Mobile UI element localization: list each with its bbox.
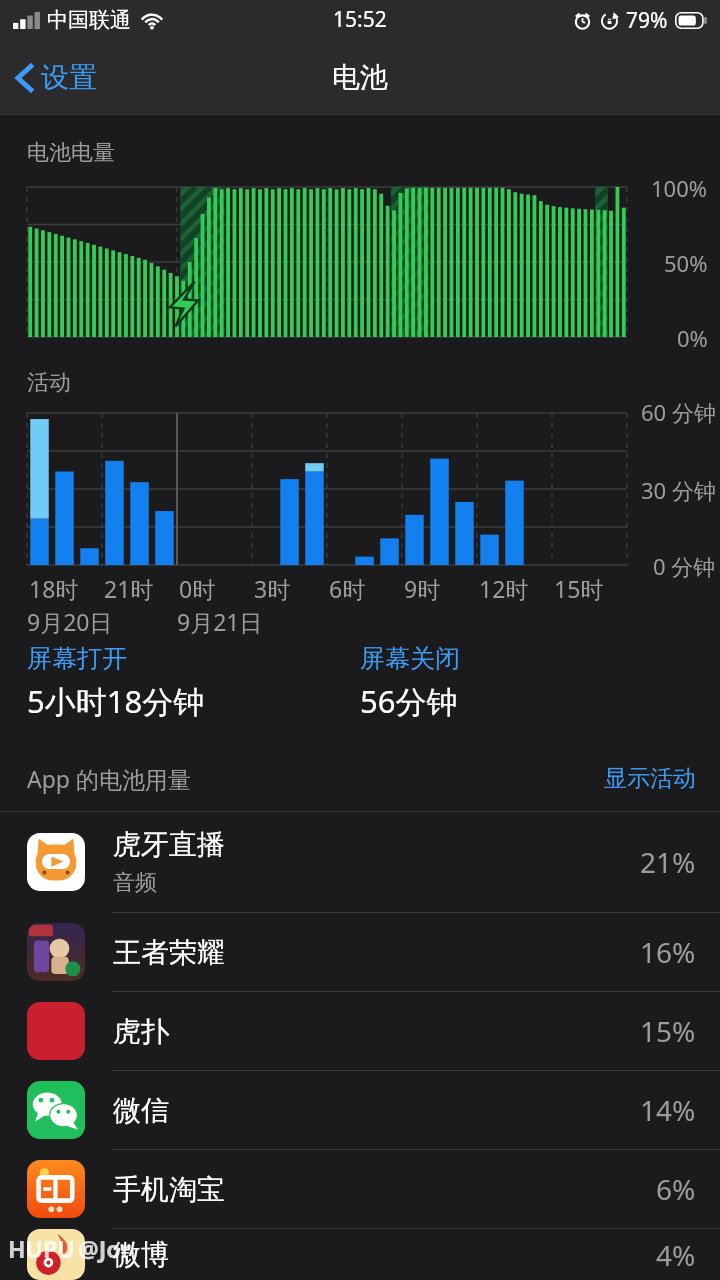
staticText: 60 分钟: [641, 397, 716, 427]
staticText: 设置: [41, 60, 97, 95]
staticText: 15时: [554, 573, 604, 604]
staticText: 电池电量: [27, 139, 115, 167]
staticText: 79%: [626, 6, 668, 35]
staticText: 0%: [677, 323, 708, 353]
staticText: 50%: [664, 248, 708, 278]
staticText: 5小时18分钟: [27, 680, 205, 722]
staticText: 屏幕打开: [27, 643, 127, 674]
staticText: 6时: [329, 573, 366, 604]
staticText: 微博: [113, 1237, 169, 1272]
button[interactable]: 微博: [0, 1229, 720, 1280]
button[interactable]: 手机淘宝: [0, 1150, 720, 1228]
staticText: 4%: [656, 1236, 696, 1274]
staticText: 9月21日: [177, 606, 263, 637]
staticText: 虎扑: [113, 1014, 169, 1049]
staticText: 12时: [479, 573, 529, 604]
staticText: 15%: [640, 1012, 696, 1050]
staticText: 音频: [113, 869, 157, 897]
staticText: 21时: [104, 573, 154, 604]
staticText: HUPU: [8, 1233, 75, 1264]
button[interactable]: 虎牙直播: [0, 812, 720, 912]
staticText: 30 分钟: [641, 475, 716, 505]
staticText: 显示活动: [604, 764, 696, 793]
staticText: 王者荣耀: [113, 935, 225, 970]
staticText: 活动: [27, 369, 71, 397]
staticText: 微信: [113, 1093, 169, 1128]
staticText: App 的电池用量: [27, 763, 191, 794]
button[interactable]: 王者荣耀: [0, 913, 720, 991]
staticText: 21%: [640, 843, 696, 881]
staticText: 电池: [332, 60, 388, 95]
staticText: 9时: [404, 573, 441, 604]
staticText: 0 分钟: [653, 551, 716, 581]
staticText: 15:52: [333, 5, 387, 34]
staticText: 6%: [656, 1170, 696, 1208]
staticText: 16%: [640, 933, 696, 971]
button[interactable]: 微信: [0, 1071, 720, 1149]
staticText: 手机淘宝: [113, 1172, 225, 1207]
button[interactable]: 设置: [0, 50, 115, 105]
staticText: 虎牙直播: [113, 827, 225, 862]
staticText: 14%: [640, 1091, 696, 1129]
staticText: 56分钟: [360, 680, 458, 722]
staticText: 9月20日: [27, 606, 113, 637]
staticText: 屏幕关闭: [360, 643, 460, 674]
staticText: 0时: [179, 573, 216, 604]
staticText: 100%: [651, 173, 708, 203]
staticText: 中国联通: [47, 7, 131, 33]
button[interactable]: 显示活动: [598, 758, 702, 799]
staticText: 3时: [254, 573, 291, 604]
button[interactable]: 虎扑: [0, 992, 720, 1070]
staticText: @Jor: [78, 1233, 131, 1264]
staticText: 18时: [29, 573, 79, 604]
